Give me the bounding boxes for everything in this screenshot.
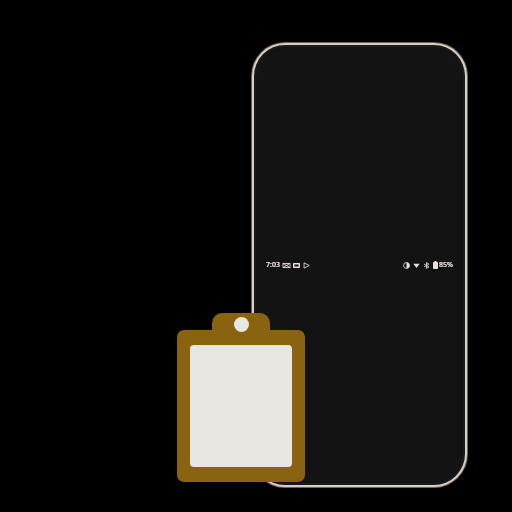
staticText: 85%	[439, 260, 453, 270]
button[interactable]: Clipboard	[177, 330, 305, 482]
staticText: 7:03	[266, 260, 280, 270]
